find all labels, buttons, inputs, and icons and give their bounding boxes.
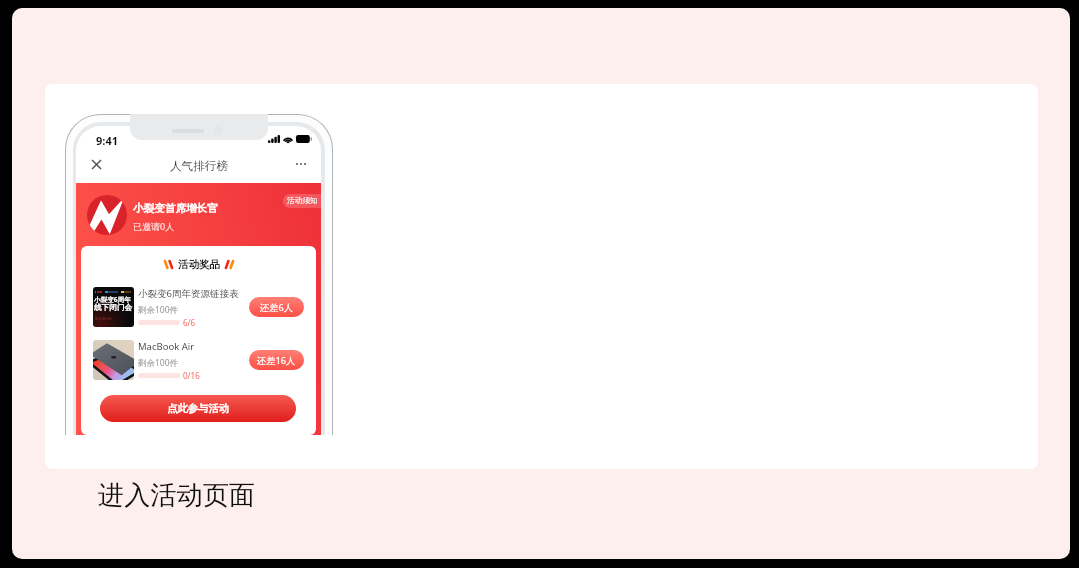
staticText: 小裂变6周年资源链接表 <box>138 287 239 300</box>
button[interactable]: Close <box>84 152 108 176</box>
staticText: 还差16人 <box>257 354 296 367</box>
staticText: 点此参与活动 <box>167 402 230 415</box>
staticText: 还差6人 <box>260 301 293 314</box>
staticText: 0/16 <box>183 370 200 381</box>
staticText: 6/6 <box>183 317 196 328</box>
button[interactable]: More options <box>289 152 313 176</box>
staticText: MacBook Air <box>138 340 195 353</box>
staticText: 活动须知 <box>287 196 318 206</box>
staticText: 剩余100件 <box>138 304 179 316</box>
staticText: 线下闭门会 <box>94 303 132 313</box>
staticText: 剩余100件 <box>138 357 179 369</box>
staticText: 已邀请0人 <box>133 220 175 232</box>
staticText: 进入活动页面 <box>98 479 256 512</box>
staticText: 小裂变6周年 <box>94 295 131 304</box>
button[interactable]: 还差6人 <box>249 297 304 317</box>
staticText: 活动奖品 <box>178 258 220 271</box>
staticText: 小裂变首席增长官 <box>133 202 218 215</box>
button[interactable]: 点此参与活动 <box>100 395 296 422</box>
staticText: 报名倒计时 <box>95 317 112 321</box>
button[interactable]: 还差16人 <box>249 350 304 370</box>
staticText: 9:41 <box>96 133 118 148</box>
staticText: 人气排行榜 <box>170 159 228 174</box>
button[interactable]: 活动须知 <box>283 194 321 208</box>
